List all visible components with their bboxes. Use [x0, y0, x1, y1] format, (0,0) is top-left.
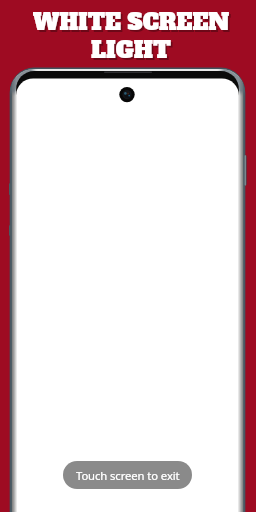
- staticText: Touch screen to exit: [76, 468, 180, 483]
- staticText: LIGHT: [5, 36, 256, 67]
- staticText: WHITE SCREEN: [3, 7, 256, 38]
- staticText: LIGHT: [3, 34, 256, 65]
- staticText: WHITE SCREEN: [5, 9, 256, 40]
- button[interactable]: Touch screen to exit: [63, 461, 192, 489]
